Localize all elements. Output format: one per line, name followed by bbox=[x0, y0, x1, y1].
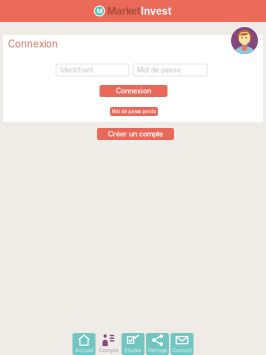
staticText: Mot de passe perdu bbox=[111, 109, 156, 114]
staticText: Accueil bbox=[75, 347, 93, 353]
staticText: Connexion bbox=[8, 38, 58, 50]
staticText: Connexion bbox=[116, 87, 151, 95]
staticText: Etudes bbox=[124, 347, 141, 353]
button[interactable]: Partage bbox=[146, 333, 169, 355]
staticText: Contact bbox=[172, 347, 192, 353]
button[interactable]: Compte bbox=[97, 333, 120, 355]
staticText: Partage bbox=[148, 347, 167, 353]
button[interactable]: Mot de passe perdu bbox=[110, 107, 158, 116]
staticText: Invest bbox=[141, 5, 172, 17]
staticText: M bbox=[96, 7, 102, 15]
staticText: Identifiant bbox=[60, 66, 93, 74]
staticText: Créer un compte bbox=[108, 130, 163, 138]
staticText: Market bbox=[107, 5, 141, 17]
staticText: Compte bbox=[98, 347, 118, 353]
button[interactable]: Etudes bbox=[121, 333, 144, 355]
staticText: Mot de passe bbox=[137, 66, 181, 74]
button[interactable]: Créer un compte bbox=[97, 128, 174, 140]
button[interactable]: Connexion bbox=[99, 85, 167, 97]
button[interactable]: Accueil bbox=[72, 333, 95, 355]
button[interactable]: Contact bbox=[170, 333, 193, 355]
